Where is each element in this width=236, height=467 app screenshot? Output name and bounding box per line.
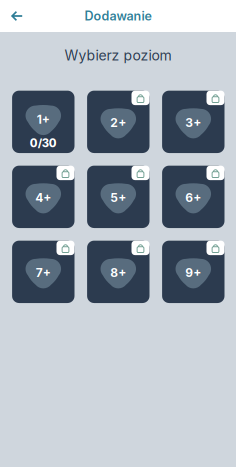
staticText: Wybierz poziom bbox=[64, 47, 171, 64]
button[interactable]: Back bbox=[0, 3, 32, 29]
button[interactable]: 5+ bbox=[87, 166, 149, 228]
staticText: 1+ bbox=[37, 112, 50, 127]
button[interactable]: 1+ bbox=[12, 91, 74, 153]
staticText: 9+ bbox=[185, 265, 201, 280]
staticText: 7+ bbox=[36, 265, 51, 280]
button[interactable]: 6+ bbox=[162, 166, 224, 228]
staticText: 4+ bbox=[35, 190, 51, 205]
staticText: 8+ bbox=[110, 265, 126, 280]
staticText: 0/30 bbox=[30, 136, 57, 150]
button[interactable]: 7+ bbox=[12, 241, 74, 303]
button[interactable]: 9+ bbox=[162, 241, 224, 303]
button[interactable]: 3+ bbox=[162, 91, 224, 153]
staticText: 2+ bbox=[110, 115, 126, 130]
staticText: 3+ bbox=[185, 115, 201, 130]
staticText: 5+ bbox=[110, 190, 126, 205]
button[interactable]: 4+ bbox=[12, 166, 74, 228]
button[interactable]: 8+ bbox=[87, 241, 149, 303]
staticText: Dodawanie bbox=[84, 8, 151, 24]
button[interactable]: 2+ bbox=[87, 91, 149, 153]
staticText: 6+ bbox=[185, 190, 201, 205]
